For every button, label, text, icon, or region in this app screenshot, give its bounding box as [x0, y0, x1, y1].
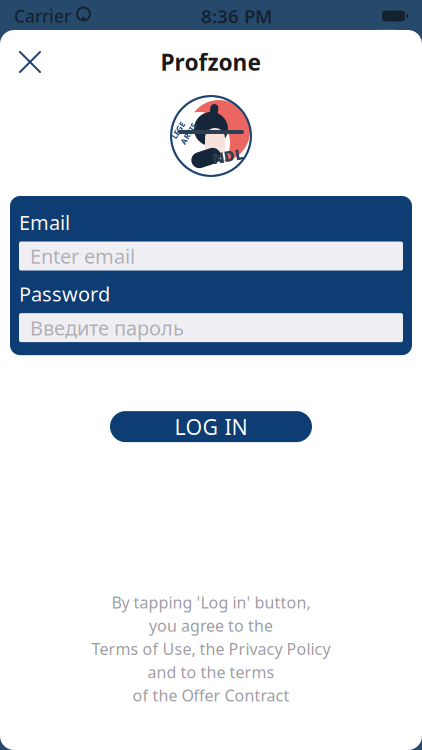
button[interactable]: Close: [8, 40, 52, 84]
staticText: Terms of Use, the Privacy Policy: [91, 638, 330, 659]
staticText: Password: [19, 281, 110, 307]
staticText: Enter email: [30, 243, 135, 269]
staticText: Email: [19, 209, 70, 236]
button[interactable]: Enter email: [19, 242, 403, 271]
staticText: LEGE ARTIS: [172, 120, 195, 142]
button[interactable]: LOG IN: [110, 411, 312, 442]
staticText: LOG IN: [174, 412, 247, 441]
button[interactable]: Введите пароль: [19, 313, 403, 342]
staticText: Carrier: [14, 4, 71, 27]
staticText: By tapping 'Log in' button,: [111, 592, 310, 613]
staticText: Введите пароль: [30, 314, 184, 341]
staticText: 8:36 PM: [201, 4, 272, 28]
staticText: you agree to the: [149, 615, 273, 636]
staticText: of the Offer Contract: [132, 685, 289, 706]
staticText: and to the terms: [147, 661, 274, 683]
staticText: Profzone: [160, 47, 261, 77]
staticText: NDL: [212, 146, 244, 166]
